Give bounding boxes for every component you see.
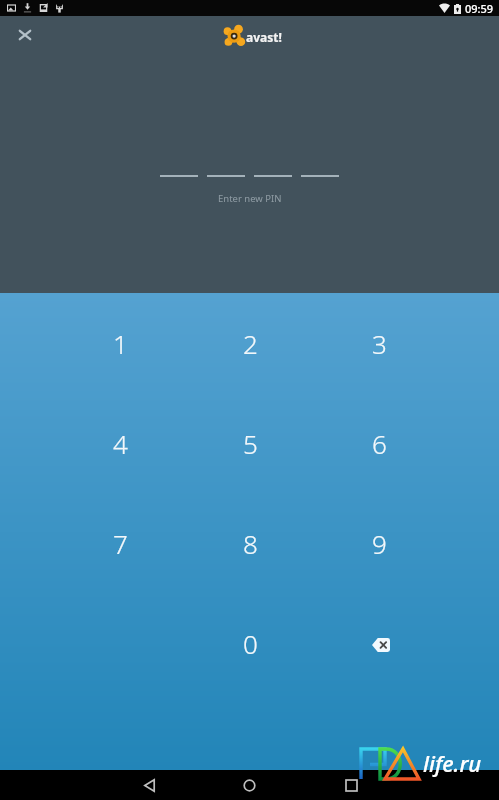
staticText: 09:59 <box>465 1 494 16</box>
staticText: avast! <box>246 29 282 45</box>
staticText: 1 <box>113 326 128 361</box>
button[interactable]: Close <box>8 18 42 52</box>
staticText: 5 <box>243 426 258 461</box>
button[interactable]: 7 <box>56 493 184 593</box>
button[interactable]: Home <box>227 770 271 800</box>
button[interactable]: 5 <box>186 393 314 493</box>
staticText: 4 <box>113 426 128 461</box>
button[interactable]: Back <box>127 770 171 800</box>
button[interactable]: 3 <box>315 293 443 393</box>
staticText: 9 <box>372 526 387 561</box>
staticText: 8 <box>243 526 258 561</box>
button[interactable]: 0 <box>186 593 314 693</box>
staticText: 0 <box>243 626 258 661</box>
button[interactable]: 2 <box>186 293 314 393</box>
button[interactable]: Recents <box>329 770 373 800</box>
staticText: 7 <box>113 526 128 561</box>
button[interactable]: 1 <box>56 293 184 393</box>
button[interactable]: 9 <box>315 493 443 593</box>
staticText: 6 <box>372 426 387 461</box>
button[interactable]: 6 <box>315 393 443 493</box>
button[interactable]: 8 <box>186 493 314 593</box>
button[interactable]: Backspace <box>315 593 443 693</box>
staticText: 2 <box>243 326 258 361</box>
staticText: life.ru <box>423 748 482 778</box>
button[interactable]: 4 <box>56 393 184 493</box>
staticText: Enter new PIN <box>218 192 282 205</box>
staticText: 3 <box>372 326 387 361</box>
